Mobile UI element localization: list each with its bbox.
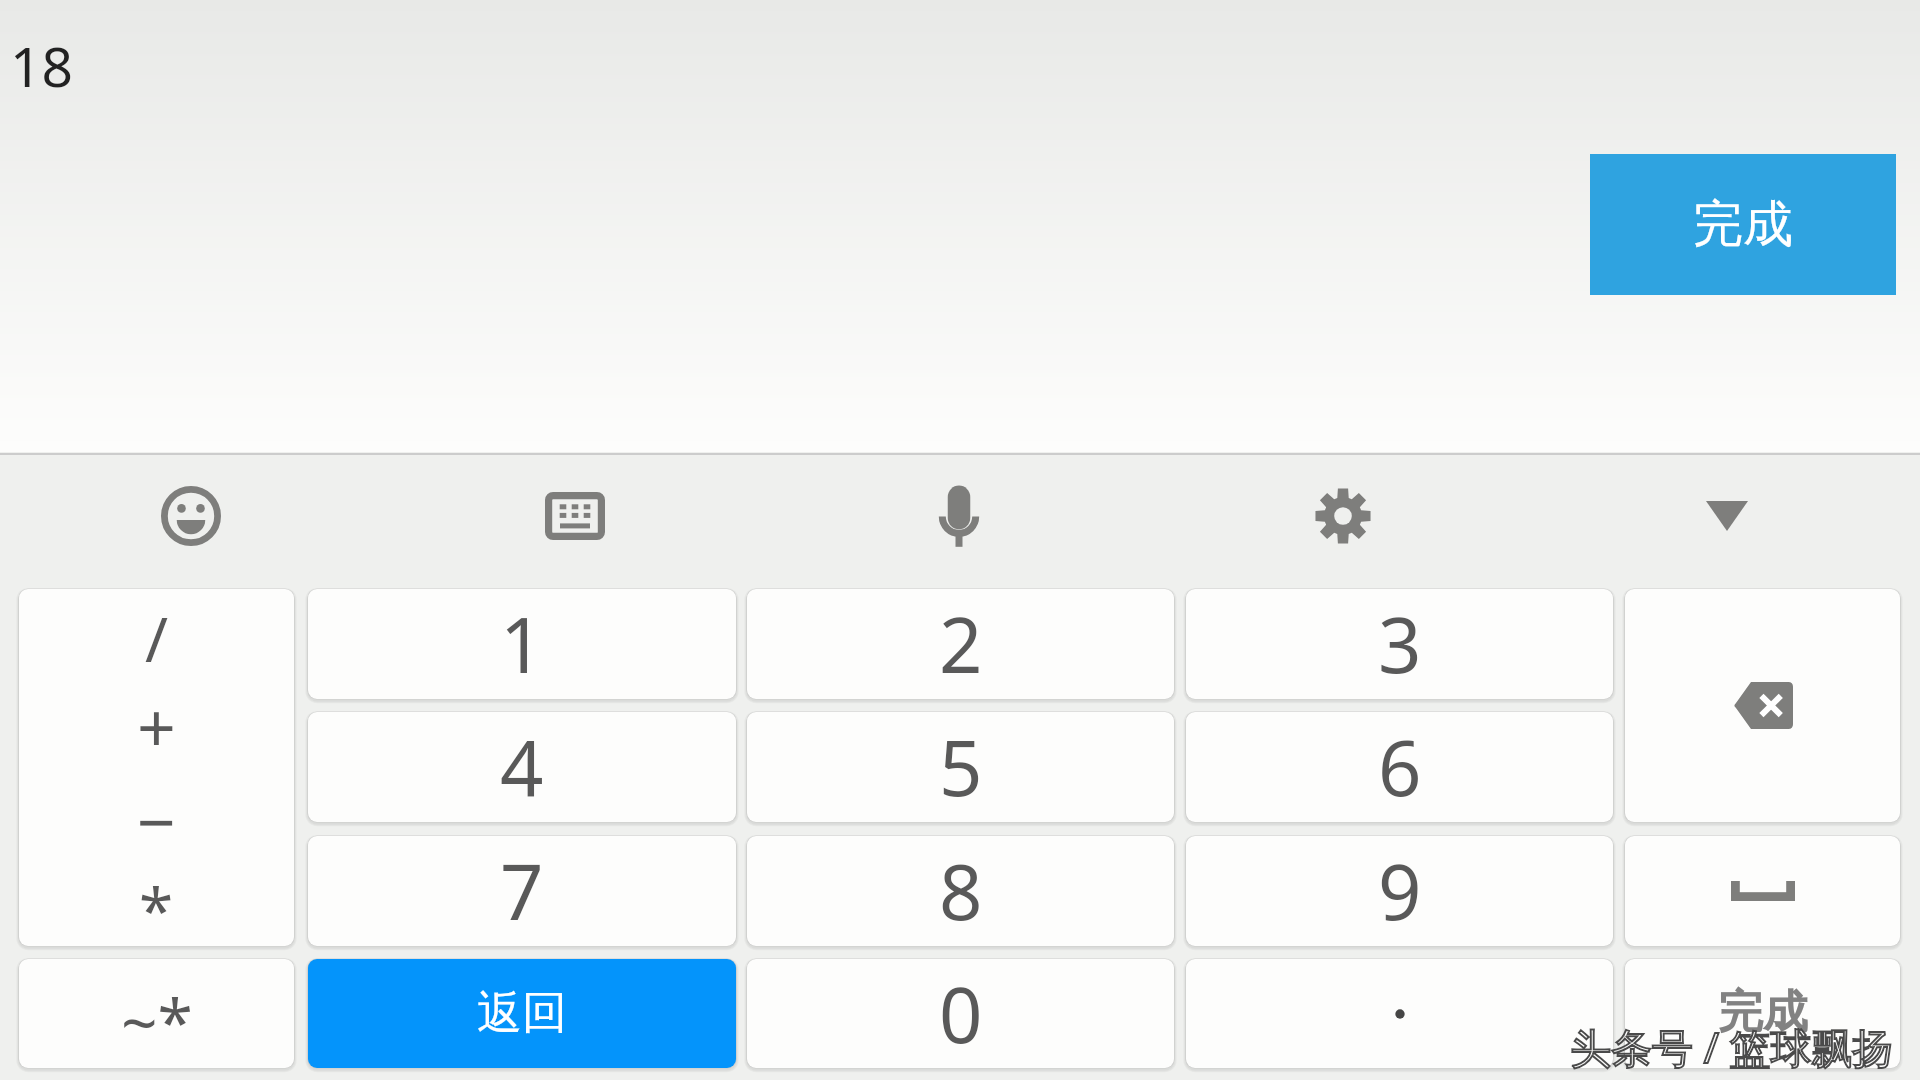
button[interactable]: Emoji xyxy=(143,468,239,564)
button[interactable]: 4 xyxy=(308,712,736,822)
button[interactable]: 6 xyxy=(1186,712,1613,822)
staticText: − xyxy=(137,774,176,867)
button[interactable]: / xyxy=(19,589,294,946)
button[interactable]: 0 xyxy=(747,959,1174,1068)
button[interactable]: 5 xyxy=(747,712,1174,822)
staticText: 3 xyxy=(1378,592,1422,696)
staticText: / xyxy=(145,596,169,680)
staticText: 返回 xyxy=(477,985,567,1042)
button[interactable]: Switch keyboard xyxy=(527,468,623,564)
staticText: 4 xyxy=(500,715,544,819)
button[interactable] xyxy=(1625,589,1900,822)
staticText: 18 xyxy=(10,28,73,103)
button[interactable]: Voice input xyxy=(911,468,1007,564)
staticText: 6 xyxy=(1378,715,1422,819)
staticText: 头条号 / 篮球飘扬 xyxy=(1570,1019,1894,1075)
button[interactable]: 完成 xyxy=(1625,959,1900,1068)
button[interactable]: 2 xyxy=(747,589,1174,699)
staticText: 2 xyxy=(939,592,983,696)
staticText: 完成 xyxy=(1718,984,1808,1041)
staticText: 5 xyxy=(939,715,983,819)
button[interactable] xyxy=(1186,959,1613,1068)
staticText: 8 xyxy=(939,839,983,943)
button[interactable]: ~* xyxy=(19,959,294,1068)
button[interactable]: 返回 xyxy=(308,959,736,1068)
button[interactable]: 8 xyxy=(747,836,1174,946)
button[interactable] xyxy=(1625,836,1900,946)
button[interactable]: 1 xyxy=(308,589,736,699)
button[interactable]: 9 xyxy=(1186,836,1613,946)
staticText: 完成 xyxy=(1693,193,1793,256)
staticText: + xyxy=(137,680,176,773)
staticText: ~* xyxy=(121,978,193,1065)
button[interactable]: Hide keyboard xyxy=(1679,468,1775,564)
staticText: 7 xyxy=(500,839,544,943)
staticText: 9 xyxy=(1378,839,1422,943)
button[interactable]: 7 xyxy=(308,836,736,946)
staticText: * xyxy=(139,867,174,946)
button[interactable]: Settings xyxy=(1295,468,1391,564)
button[interactable]: 完成 xyxy=(1590,154,1896,295)
staticText: 1 xyxy=(500,592,544,696)
button[interactable]: 3 xyxy=(1186,589,1613,699)
staticText: 0 xyxy=(939,962,983,1066)
